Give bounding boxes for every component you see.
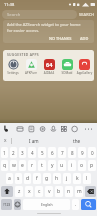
staticText: I am bbox=[29, 138, 39, 144]
staticText: 9 bbox=[81, 150, 84, 156]
staticText: w bbox=[12, 162, 16, 169]
button[interactable]: Search bbox=[2, 10, 77, 19]
button[interactable]: Apps bbox=[57, 123, 68, 135]
button[interactable]: 4 bbox=[28, 147, 36, 158]
button[interactable]: Theme bbox=[68, 123, 79, 135]
button[interactable]: . bbox=[72, 199, 79, 210]
button[interactable]: English bbox=[23, 199, 70, 210]
staticText: NO THANKS bbox=[49, 36, 72, 41]
button[interactable]: Search bbox=[81, 199, 96, 210]
button[interactable]: More options bbox=[83, 123, 97, 135]
button[interactable]: m bbox=[75, 186, 83, 197]
staticText: 3 bbox=[21, 150, 24, 156]
button[interactable]: 3 bbox=[19, 147, 26, 158]
button[interactable]: d bbox=[24, 173, 31, 184]
button[interactable]: 64 bbox=[40, 59, 58, 75]
staticText: the bbox=[73, 138, 81, 144]
staticText: h bbox=[55, 175, 59, 182]
staticText: 11:38 bbox=[4, 2, 15, 7]
button[interactable]: k bbox=[73, 173, 81, 184]
button[interactable]: Emoji bbox=[14, 199, 21, 210]
button[interactable]: 9 bbox=[78, 147, 86, 158]
button[interactable]: NO THANKS bbox=[47, 34, 74, 43]
button[interactable]: Settings bbox=[35, 123, 46, 135]
button[interactable]: q bbox=[1, 160, 8, 171]
staticText: s bbox=[17, 175, 20, 182]
button[interactable]: b bbox=[55, 186, 63, 197]
button[interactable]: y bbox=[48, 160, 56, 171]
button[interactable]: 1 bbox=[1, 147, 8, 158]
staticText: Settings bbox=[4, 71, 22, 75]
button[interactable]: g bbox=[43, 173, 51, 184]
button[interactable]: h bbox=[53, 173, 61, 184]
staticText: 4 bbox=[31, 150, 34, 156]
staticText: o bbox=[80, 162, 84, 169]
button[interactable]: ?123 bbox=[1, 199, 12, 210]
staticText: 6 bbox=[51, 150, 54, 156]
button[interactable]: I am bbox=[12, 135, 56, 146]
staticText: f bbox=[36, 175, 38, 182]
button[interactable]: APKPure bbox=[22, 59, 40, 75]
staticText: i bbox=[71, 162, 73, 169]
button[interactable]: t bbox=[38, 160, 46, 171]
button[interactable]: i bbox=[68, 160, 76, 171]
button[interactable]: Backspace bbox=[85, 186, 96, 197]
button[interactable]: AppGallery bbox=[76, 59, 93, 75]
staticText: t bbox=[41, 162, 43, 169]
button[interactable]: ADD bbox=[78, 34, 91, 43]
staticText: q bbox=[3, 162, 7, 169]
button[interactable]: Shift bbox=[1, 186, 13, 197]
button[interactable]: SEARCH bbox=[77, 10, 97, 19]
staticText: 8 bbox=[71, 150, 74, 156]
button[interactable]: 0 bbox=[88, 147, 96, 158]
button[interactable]: c bbox=[35, 186, 43, 197]
staticText: c bbox=[38, 188, 41, 195]
button[interactable]: Keyboard home bbox=[0, 123, 13, 135]
staticText: e bbox=[21, 162, 24, 169]
button[interactable]: w bbox=[10, 160, 17, 171]
staticText: Search bbox=[7, 12, 21, 18]
button[interactable]: Settings bbox=[4, 59, 22, 75]
staticText: 64 bbox=[46, 61, 53, 68]
button[interactable]: z bbox=[15, 186, 23, 197]
button[interactable]: Clipboard bbox=[24, 123, 35, 135]
button[interactable]: n bbox=[65, 186, 73, 197]
staticText: 2 bbox=[12, 150, 15, 156]
button[interactable]: Stickers bbox=[13, 123, 24, 135]
button[interactable]: u bbox=[58, 160, 66, 171]
staticText: a bbox=[8, 175, 11, 182]
staticText: z bbox=[18, 188, 21, 195]
button[interactable]: r bbox=[28, 160, 36, 171]
button[interactable]: s bbox=[15, 173, 22, 184]
button[interactable]: f bbox=[33, 173, 41, 184]
staticText: k bbox=[76, 175, 79, 182]
staticText: d bbox=[26, 175, 30, 182]
button[interactable]: 5 bbox=[38, 147, 46, 158]
staticText: g bbox=[45, 175, 49, 182]
staticText: ADD bbox=[80, 36, 89, 41]
staticText: p bbox=[90, 162, 94, 169]
button[interactable]: l bbox=[83, 173, 91, 184]
button[interactable]: p bbox=[88, 160, 96, 171]
button[interactable]: 6 bbox=[48, 147, 56, 158]
staticText: b bbox=[57, 188, 61, 195]
staticText: AIDA64 bbox=[40, 71, 58, 75]
button[interactable]: o bbox=[78, 160, 86, 171]
button[interactable]: x bbox=[25, 186, 33, 197]
button[interactable]: e bbox=[19, 160, 26, 171]
button[interactable]: 7 bbox=[58, 147, 66, 158]
button[interactable]: j bbox=[63, 173, 71, 184]
button[interactable]: Voice input bbox=[46, 123, 57, 135]
staticText: n bbox=[67, 188, 71, 195]
button[interactable]: v bbox=[45, 186, 53, 197]
staticText: ?123 bbox=[3, 202, 11, 207]
button[interactable]: the bbox=[56, 135, 97, 146]
button[interactable]: X bbox=[0, 135, 11, 146]
button[interactable]: 8 bbox=[68, 147, 76, 158]
staticText: y bbox=[51, 162, 54, 169]
staticText: l bbox=[86, 175, 88, 182]
staticText: v bbox=[48, 188, 51, 195]
button[interactable]: 2 bbox=[10, 147, 17, 158]
button[interactable]: SDMaid bbox=[58, 59, 76, 75]
button[interactable]: a bbox=[6, 173, 13, 184]
